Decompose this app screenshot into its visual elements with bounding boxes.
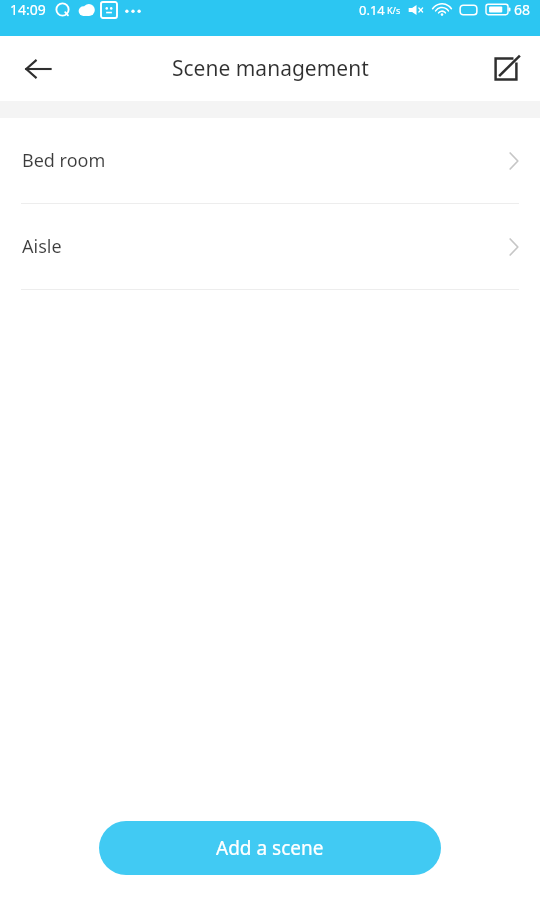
- button[interactable]: Edit: [480, 43, 532, 95]
- staticText: 0.14: [359, 1, 385, 19]
- staticText: Scene management: [172, 54, 369, 83]
- button[interactable]: Bed room: [0, 118, 540, 203]
- staticText: Add a scene: [216, 835, 324, 861]
- button[interactable]: Add a scene: [99, 821, 441, 875]
- staticText: K/s: [387, 4, 401, 16]
- button[interactable]: Aisle: [0, 204, 540, 289]
- staticText: Aisle: [22, 234, 62, 259]
- staticText: 68: [514, 0, 531, 19]
- staticText: Bed room: [22, 148, 106, 173]
- button[interactable]: Back: [10, 41, 66, 97]
- staticText: 14:09: [10, 0, 46, 19]
